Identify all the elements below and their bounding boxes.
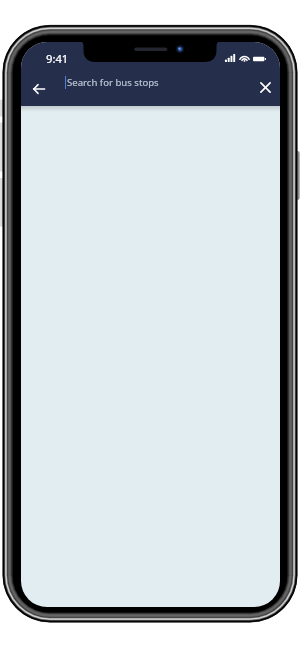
button[interactable]: Clear search xyxy=(251,73,280,102)
staticText: Search for bus stops xyxy=(67,76,159,89)
button[interactable]: Back xyxy=(24,74,53,103)
staticText: 9:41 xyxy=(46,51,69,66)
